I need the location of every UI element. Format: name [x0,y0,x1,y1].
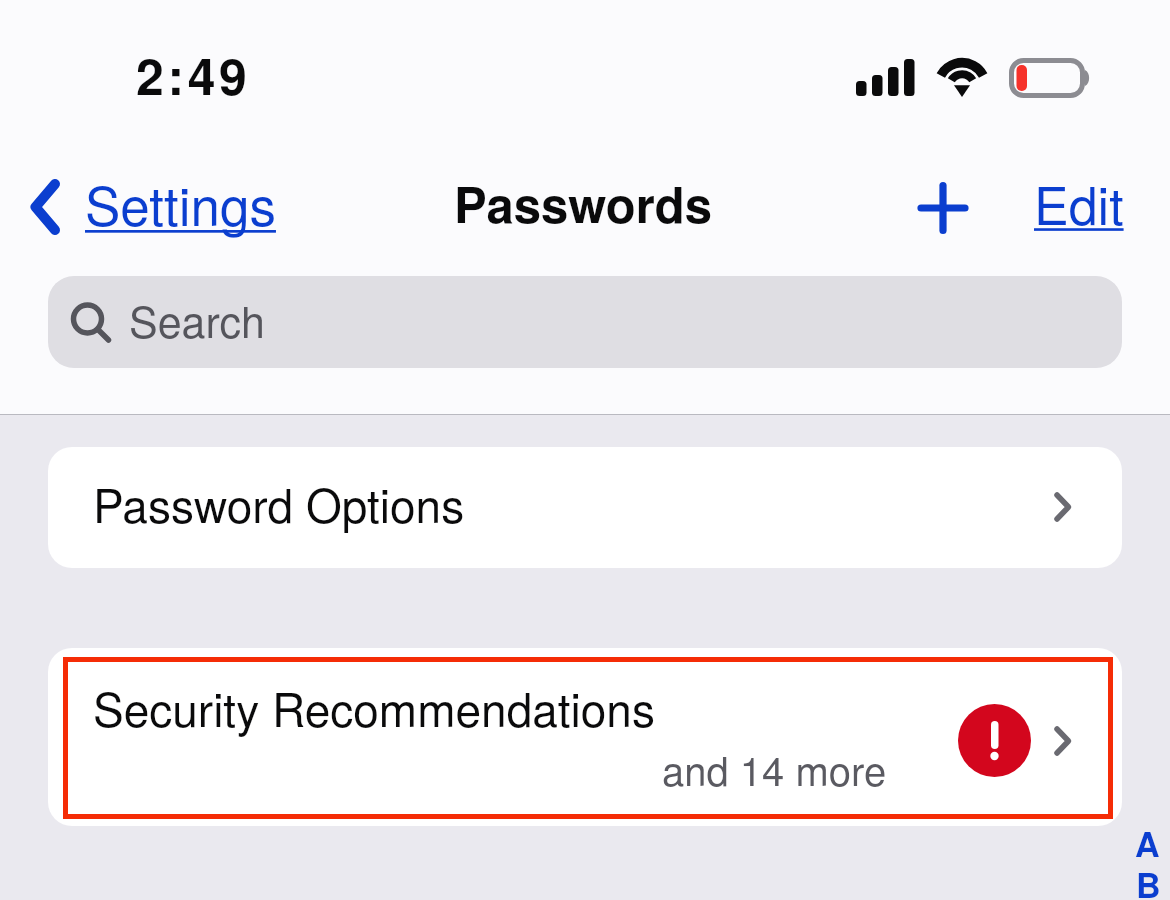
staticText: and 14 more [662,740,887,797]
staticText: Passwords [454,168,712,238]
staticText: B [1136,860,1161,900]
button[interactable]: Password Options [48,447,1122,568]
button[interactable]: Edit [1010,160,1148,254]
button[interactable]: Alphabet index [1126,812,1166,900]
button[interactable]: Settings [9,160,292,254]
button[interactable]: Security Recommendations [48,648,1122,826]
staticText: A [1135,819,1160,868]
staticText: Password Options [93,470,465,536]
staticText: Search [129,289,266,351]
button[interactable]: Search [48,276,1122,368]
staticText: Settings [85,165,276,241]
staticText: Security Recommendations [93,674,655,740]
staticText: 2:49 [136,39,251,111]
button[interactable]: Add password [898,163,988,253]
staticText: Edit [1034,165,1124,239]
